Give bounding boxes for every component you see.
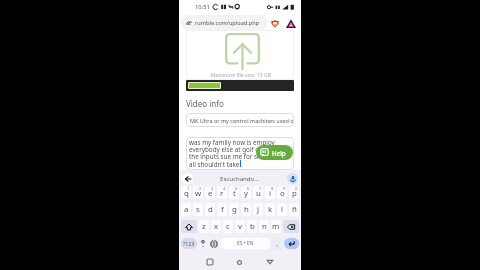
staticText: 0	[295, 186, 298, 191]
button[interactable]: d	[205, 203, 215, 216]
button[interactable]: Brave shields	[270, 19, 279, 28]
button[interactable]: was my family now is employ	[186, 137, 294, 170]
button[interactable]: n	[259, 220, 269, 233]
staticText: ES • EN	[237, 240, 254, 247]
button[interactable]: Rumble	[286, 19, 295, 28]
button[interactable]: Help	[256, 145, 293, 160]
button[interactable]: a	[181, 203, 191, 216]
button[interactable]: Maximum file size: 15 GB	[186, 30, 294, 80]
staticText: e	[208, 188, 213, 199]
button[interactable]: u	[253, 186, 263, 199]
button[interactable]: l	[277, 203, 287, 216]
staticText: s	[196, 204, 200, 215]
staticText: r	[220, 188, 224, 199]
staticText: 8	[271, 186, 274, 191]
button[interactable]: x	[211, 220, 221, 233]
button[interactable]: v	[235, 220, 245, 233]
staticText: m	[272, 221, 280, 232]
button[interactable]: ?123	[181, 238, 197, 249]
button[interactable]: g	[229, 203, 239, 216]
staticText: k	[268, 204, 273, 215]
button[interactable]: Home	[230, 253, 248, 270]
button[interactable]: y	[241, 186, 251, 199]
button[interactable]: i	[265, 186, 275, 199]
staticText: 5	[235, 186, 238, 191]
staticText: MK Ultra or my control machines used on	[190, 117, 294, 124]
button[interactable]: rumble.com/upload.php	[181, 15, 268, 30]
staticText: rumble.com/upload.php	[195, 19, 260, 27]
button[interactable]: k	[265, 203, 275, 216]
button[interactable]: b	[247, 220, 257, 233]
button[interactable]: ñ	[289, 203, 299, 216]
staticText: w	[195, 188, 202, 199]
staticText: a	[184, 204, 189, 215]
staticText: f	[221, 204, 224, 215]
button[interactable]: q	[181, 186, 191, 199]
button[interactable]: z	[199, 220, 209, 233]
staticText: t	[233, 188, 236, 199]
staticText: everybody else at golf cou	[189, 145, 267, 154]
button[interactable]: r	[217, 186, 227, 199]
button[interactable]: t	[229, 186, 239, 199]
button[interactable]: f	[217, 203, 227, 216]
staticText: 6	[247, 186, 250, 191]
button[interactable]: Enter	[284, 238, 299, 249]
button[interactable]: o	[277, 186, 287, 199]
staticText: all shouldn't take	[189, 160, 240, 169]
button[interactable]: MK Ultra or my control machines used on	[186, 113, 294, 127]
button[interactable]: Recents	[201, 253, 219, 270]
staticText: u	[256, 188, 261, 199]
staticText: v	[238, 221, 242, 232]
staticText: y	[244, 188, 248, 199]
button[interactable]: Shift	[181, 220, 197, 233]
button[interactable]: Emoji	[199, 237, 207, 250]
staticText: was my family now is employ	[189, 138, 275, 147]
button[interactable]: m	[271, 220, 281, 233]
staticText: j	[257, 204, 260, 215]
staticText: x	[214, 221, 219, 232]
staticText: ?123	[183, 240, 195, 247]
staticText: g	[232, 204, 237, 215]
staticText: q	[184, 188, 189, 199]
staticText: Escuchando...	[220, 174, 260, 182]
staticText: h	[244, 204, 249, 215]
button[interactable]: p	[289, 186, 299, 199]
button[interactable]: Backspace	[283, 220, 299, 233]
button[interactable]: e	[205, 186, 215, 199]
staticText: 1	[187, 186, 190, 191]
button[interactable]: Language	[209, 237, 218, 250]
button[interactable]: w	[193, 186, 203, 199]
staticText: b	[250, 221, 255, 232]
staticText: i	[269, 188, 272, 199]
staticText: 4	[223, 186, 226, 191]
staticText: 3	[211, 186, 214, 191]
staticText: n	[262, 221, 267, 232]
button[interactable]: s	[193, 203, 203, 216]
staticText: ñ	[292, 204, 297, 215]
staticText: Video info	[186, 98, 224, 109]
staticText: 10:51	[195, 3, 210, 11]
button[interactable]: Back	[261, 253, 279, 270]
button[interactable]: Voice input	[287, 173, 298, 184]
staticText: d	[208, 204, 213, 215]
staticText: c	[226, 221, 230, 232]
button[interactable]: Period	[272, 237, 282, 250]
staticText: the inputs sue me for slande	[189, 152, 274, 161]
staticText: Maximum file size: 15 GB	[211, 72, 271, 79]
staticText: 7	[259, 186, 262, 191]
button[interactable]: c	[223, 220, 233, 233]
button[interactable]: j	[253, 203, 263, 216]
button[interactable]: h	[241, 203, 251, 216]
staticText: o	[280, 188, 285, 199]
staticText: z	[202, 221, 206, 232]
button[interactable]: ES • EN	[220, 238, 270, 249]
staticText: 2	[199, 186, 202, 191]
staticText: p	[292, 188, 297, 199]
staticText: Help	[272, 149, 286, 157]
staticText: 9	[283, 186, 286, 191]
button[interactable]: Back	[182, 173, 193, 184]
staticText: l	[281, 204, 284, 215]
